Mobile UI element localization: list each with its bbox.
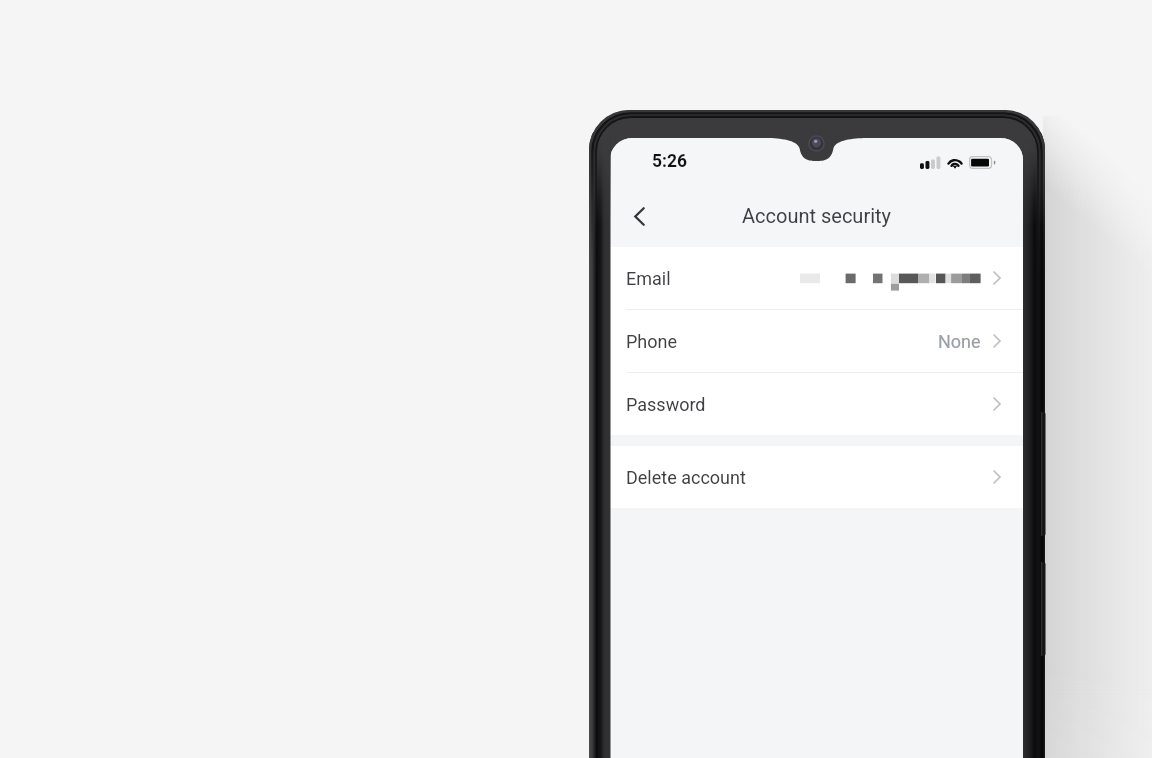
staticText: Account security <box>742 204 892 227</box>
staticText: None <box>938 331 981 352</box>
staticText: Phone <box>626 331 678 352</box>
staticText: 5:26 <box>652 151 688 172</box>
staticText: Email <box>626 268 671 289</box>
staticText: Password <box>626 394 706 415</box>
button[interactable]: Back <box>616 193 662 239</box>
staticText: Delete account <box>626 467 746 488</box>
button[interactable]: Email <box>610 247 1023 309</box>
button[interactable]: Password <box>610 373 1023 435</box>
button[interactable]: Delete account <box>610 446 1023 508</box>
button[interactable]: Phone <box>610 310 1023 372</box>
